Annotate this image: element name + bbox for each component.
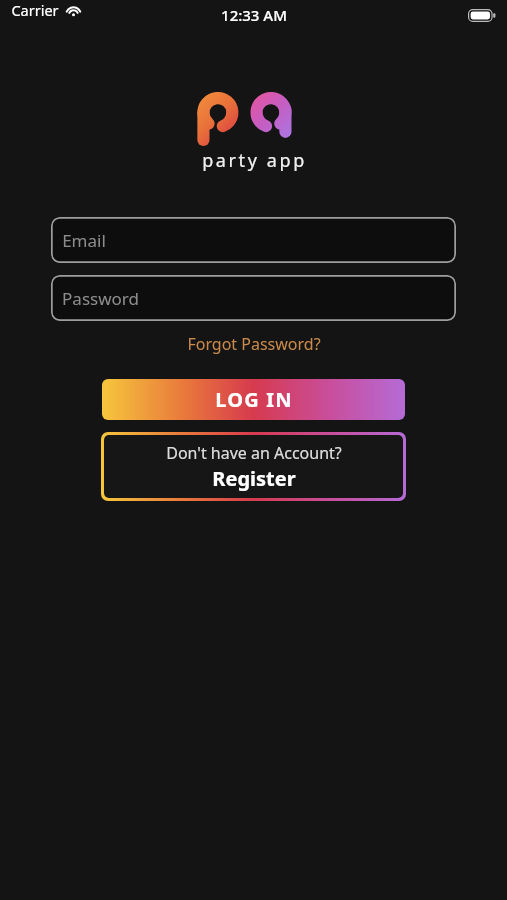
other: Wi-Fi signal <box>65 4 82 16</box>
staticText: 12:33 AM <box>221 5 287 25</box>
staticText: Register <box>212 465 296 492</box>
staticText: party app <box>202 148 307 173</box>
staticText: Carrier <box>11 0 59 20</box>
other: Party App logo <box>195 92 313 146</box>
staticText: Don't have an Account? <box>166 442 342 464</box>
staticText: LOG IN <box>215 386 293 413</box>
staticText: Forgot Password? <box>187 333 321 355</box>
staticText: Password <box>62 287 139 310</box>
button[interactable]: Password <box>51 275 456 321</box>
button[interactable]: Don't have an Account? <box>104 435 403 498</box>
button[interactable]: Email <box>51 217 456 263</box>
button[interactable]: LOG IN <box>102 379 405 420</box>
button[interactable]: Forgot Password? <box>179 330 329 358</box>
other: Battery full <box>468 9 496 22</box>
staticText: Email <box>62 229 106 252</box>
